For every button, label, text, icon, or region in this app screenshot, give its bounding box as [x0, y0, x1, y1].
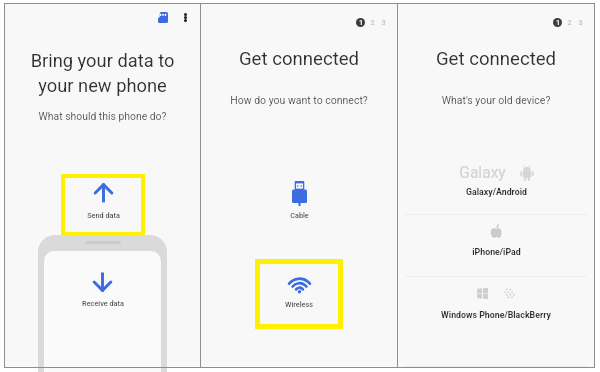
staticText: iPhone/iPad — [472, 247, 521, 257]
button[interactable]: More options — [177, 9, 194, 26]
button[interactable]: Step 1 — [553, 18, 562, 27]
button[interactable]: Galaxy — [398, 149, 594, 211]
button[interactable]: Cable — [270, 181, 328, 220]
button[interactable]: Wireless — [255, 259, 343, 329]
staticText: 1 — [359, 19, 363, 27]
staticText: 3 — [381, 18, 386, 27]
staticText: How do you want to connect? — [201, 94, 397, 106]
staticText: Cable — [290, 211, 309, 220]
staticText: Galaxy/Android — [466, 187, 527, 197]
staticText: Wireless — [285, 300, 313, 309]
button[interactable]: Step 1 — [356, 18, 365, 27]
staticText: 2 — [370, 18, 375, 27]
staticText: Galaxy — [459, 164, 506, 182]
staticText: Receive data — [82, 299, 124, 308]
button[interactable]: Send data — [61, 174, 145, 236]
staticText: Get connected — [201, 48, 397, 70]
staticText: 3 — [578, 18, 583, 27]
staticText: What should this phone do? — [5, 110, 200, 122]
button[interactable]: iPhone/iPad — [398, 212, 594, 274]
button[interactable]: Windows Phone/BlackBerry — [398, 275, 594, 337]
button[interactable]: SD card storage — [154, 9, 171, 26]
staticText: Bring your data to your new phone — [5, 50, 200, 97]
staticText: 1 — [556, 19, 560, 27]
staticText: Send data — [87, 211, 120, 220]
staticText: Get connected — [398, 48, 594, 70]
staticText: 2 — [567, 18, 572, 27]
staticText: Windows Phone/BlackBerry — [441, 310, 551, 320]
staticText: What's your old device? — [398, 94, 594, 106]
